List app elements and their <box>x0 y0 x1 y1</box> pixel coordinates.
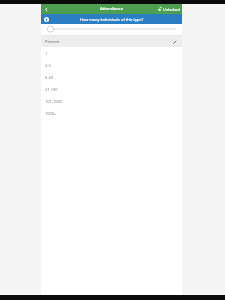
button[interactable]: 101-1000 <box>41 95 182 107</box>
button[interactable]: Back <box>41 4 51 14</box>
staticText: Attendance <box>100 6 124 12</box>
staticText: 1 <box>45 51 48 56</box>
button[interactable]: 1000+ <box>41 107 182 119</box>
staticText: Unlocked <box>163 7 180 12</box>
button[interactable]: Count slider <box>41 24 182 36</box>
staticText: 6-20 <box>45 75 53 80</box>
staticText: 101-1000 <box>45 99 62 104</box>
staticText: 1000+ <box>45 111 57 116</box>
staticText: Present <box>45 39 60 44</box>
staticText: 21-100 <box>45 87 58 92</box>
button[interactable]: 2-5 <box>41 59 182 71</box>
button[interactable]: Edit <box>172 39 178 45</box>
staticText: 2-5 <box>45 63 51 68</box>
button[interactable]: 6-20 <box>41 71 182 83</box>
button[interactable]: Present <box>41 36 182 47</box>
button[interactable]: 21-100 <box>41 83 182 95</box>
button[interactable]: Information <box>41 14 51 24</box>
button[interactable]: Unlocked <box>156 4 182 14</box>
staticText: How many individuals of this type? <box>80 17 144 22</box>
